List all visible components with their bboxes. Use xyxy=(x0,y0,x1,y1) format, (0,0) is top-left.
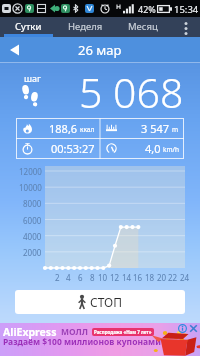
staticText: 3 547 xyxy=(141,121,170,136)
button[interactable]: 188,6 xyxy=(16,118,100,138)
button[interactable]: Неделя xyxy=(57,17,114,37)
button[interactable]: Месяц xyxy=(114,17,171,37)
button[interactable]: Previous day xyxy=(0,37,28,62)
staticText: 12000 xyxy=(19,166,42,177)
staticText: 22 xyxy=(168,272,178,283)
staticText: km/h xyxy=(163,145,179,154)
staticText: AliExpress xyxy=(3,325,57,339)
button[interactable]: 00:53:27 xyxy=(16,138,100,159)
button[interactable]: СТОП xyxy=(15,290,185,314)
button[interactable]: 3 547 xyxy=(100,118,184,138)
staticText: 42% xyxy=(138,3,156,15)
staticText: 16 xyxy=(133,272,143,283)
staticText: ккал xyxy=(80,125,95,134)
staticText: 26 мар xyxy=(78,41,122,59)
staticText: 12 xyxy=(110,272,120,283)
button[interactable]: Close ad xyxy=(189,324,198,333)
staticText: 15:34 xyxy=(174,3,199,16)
staticText: 24 xyxy=(180,272,190,283)
staticText: Распродажа «Нам 7 лет» xyxy=(94,329,152,335)
button[interactable]: Ad information xyxy=(178,324,187,333)
staticText: 4,0 xyxy=(145,141,161,156)
staticText: 00:53:27 xyxy=(51,141,95,156)
staticText: 2 xyxy=(55,272,60,283)
staticText: m xyxy=(172,125,179,134)
staticText: 20 xyxy=(157,272,167,283)
staticText: шаг xyxy=(24,72,41,84)
staticText: Неделя xyxy=(68,20,103,33)
button[interactable]: AliExpress xyxy=(0,323,200,356)
staticText: 2000 xyxy=(23,247,42,258)
staticText: 4 xyxy=(66,272,71,283)
staticText: 4000 xyxy=(23,231,42,242)
staticText: 6000 xyxy=(23,215,42,226)
staticText: 18 xyxy=(145,272,155,283)
button[interactable]: Previous day xyxy=(0,37,200,62)
staticText: Раздаём $100 миллионов купонами xyxy=(3,336,161,348)
staticText: МОЛЛ xyxy=(61,326,88,338)
staticText: 8000 xyxy=(23,198,42,209)
staticText: 10000 xyxy=(19,182,42,193)
staticText: 5 068 xyxy=(79,64,184,116)
button[interactable]: More options xyxy=(171,17,200,37)
staticText: Сутки xyxy=(15,20,42,33)
staticText: 8 xyxy=(90,272,95,283)
button[interactable]: 4,0 xyxy=(100,138,184,159)
staticText: 6 xyxy=(78,272,83,283)
staticText: 188,6 xyxy=(49,121,78,136)
staticText: Месяц xyxy=(128,20,158,33)
staticText: 10 xyxy=(98,272,108,283)
staticText: СТОП xyxy=(90,294,123,310)
button[interactable]: Сутки xyxy=(0,17,57,37)
staticText: 14 xyxy=(122,272,132,283)
